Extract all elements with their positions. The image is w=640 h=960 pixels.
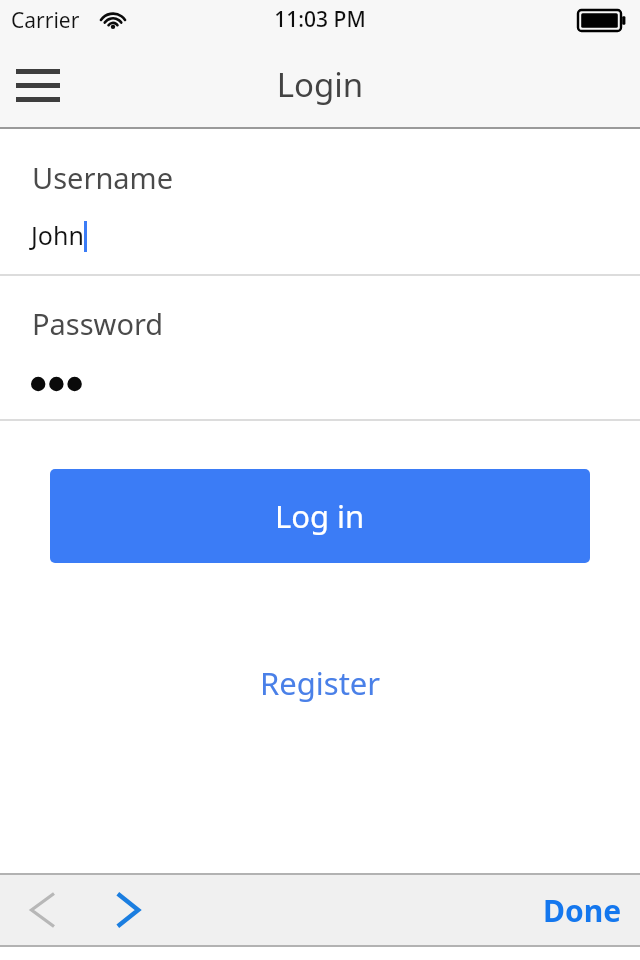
button[interactable]: Done — [535, 875, 630, 945]
button[interactable]: Menu — [8, 54, 68, 114]
button[interactable]: John — [0, 211, 640, 259]
staticText: John — [31, 218, 84, 252]
button[interactable]: Log in — [50, 469, 590, 563]
staticText: Done — [543, 890, 622, 931]
staticText: Log in — [275, 495, 365, 537]
button[interactable]: Register — [0, 651, 640, 715]
button[interactable]: Next field — [96, 875, 160, 945]
staticText: 11:03 PM — [0, 5, 640, 34]
staticText: Username — [32, 158, 174, 197]
staticText: Login — [0, 62, 640, 107]
button[interactable] — [0, 357, 640, 413]
staticText: Register — [260, 662, 381, 704]
staticText: Carrier — [11, 6, 80, 35]
staticText: Password — [32, 304, 164, 343]
button[interactable]: Previous field — [10, 875, 74, 945]
